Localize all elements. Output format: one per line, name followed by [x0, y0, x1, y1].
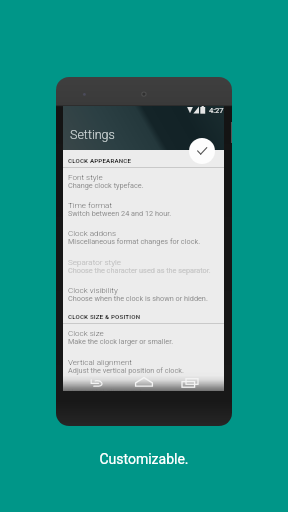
staticText: Make the clock larger or smaller.	[68, 337, 174, 346]
staticText: Clock size	[68, 328, 104, 337]
staticText: Change clock typeface.	[68, 181, 144, 190]
button[interactable]: Clock visibility	[63, 281, 224, 309]
staticText: Font style	[68, 172, 103, 181]
staticText: Miscellaneous format changes for clock.	[68, 237, 201, 246]
staticText: Switch between 24 and 12 hour.	[68, 209, 172, 218]
staticText: Clock visibility	[68, 285, 118, 294]
staticText: Customizable.	[99, 451, 189, 467]
button[interactable]: Vertical alignment	[63, 353, 224, 381]
staticText: Horizontal alignment	[68, 386, 142, 391]
staticText: Time format	[68, 200, 113, 209]
staticText: Adjust the vertical position of clock.	[68, 366, 184, 375]
button[interactable]: Time format	[63, 196, 224, 224]
staticText: Separator style	[68, 257, 122, 266]
button[interactable]: Clock size	[63, 324, 224, 352]
button[interactable]: Back	[88, 376, 108, 390]
button[interactable]: Horizontal alignment	[63, 382, 224, 391]
button[interactable]: Recent apps	[180, 376, 200, 390]
staticText: Vertical alignment	[68, 357, 132, 366]
staticText: Choose the character used as the separat…	[68, 266, 211, 275]
staticText: CLOCK SIZE & POSITION	[68, 313, 141, 320]
button[interactable]: Font style	[63, 168, 224, 196]
staticText: Choose when the clock is shown or hidden…	[68, 294, 208, 303]
button[interactable]: Separator style	[63, 253, 224, 281]
button[interactable]: Apply	[189, 138, 215, 164]
staticText: CLOCK APPEARANCE	[68, 157, 132, 164]
staticText: Clock addons	[68, 228, 117, 237]
staticText: Settings	[70, 127, 115, 142]
staticText: 4:27	[209, 106, 224, 115]
button[interactable]: Clock addons	[63, 224, 224, 252]
button[interactable]: Home	[134, 375, 154, 389]
